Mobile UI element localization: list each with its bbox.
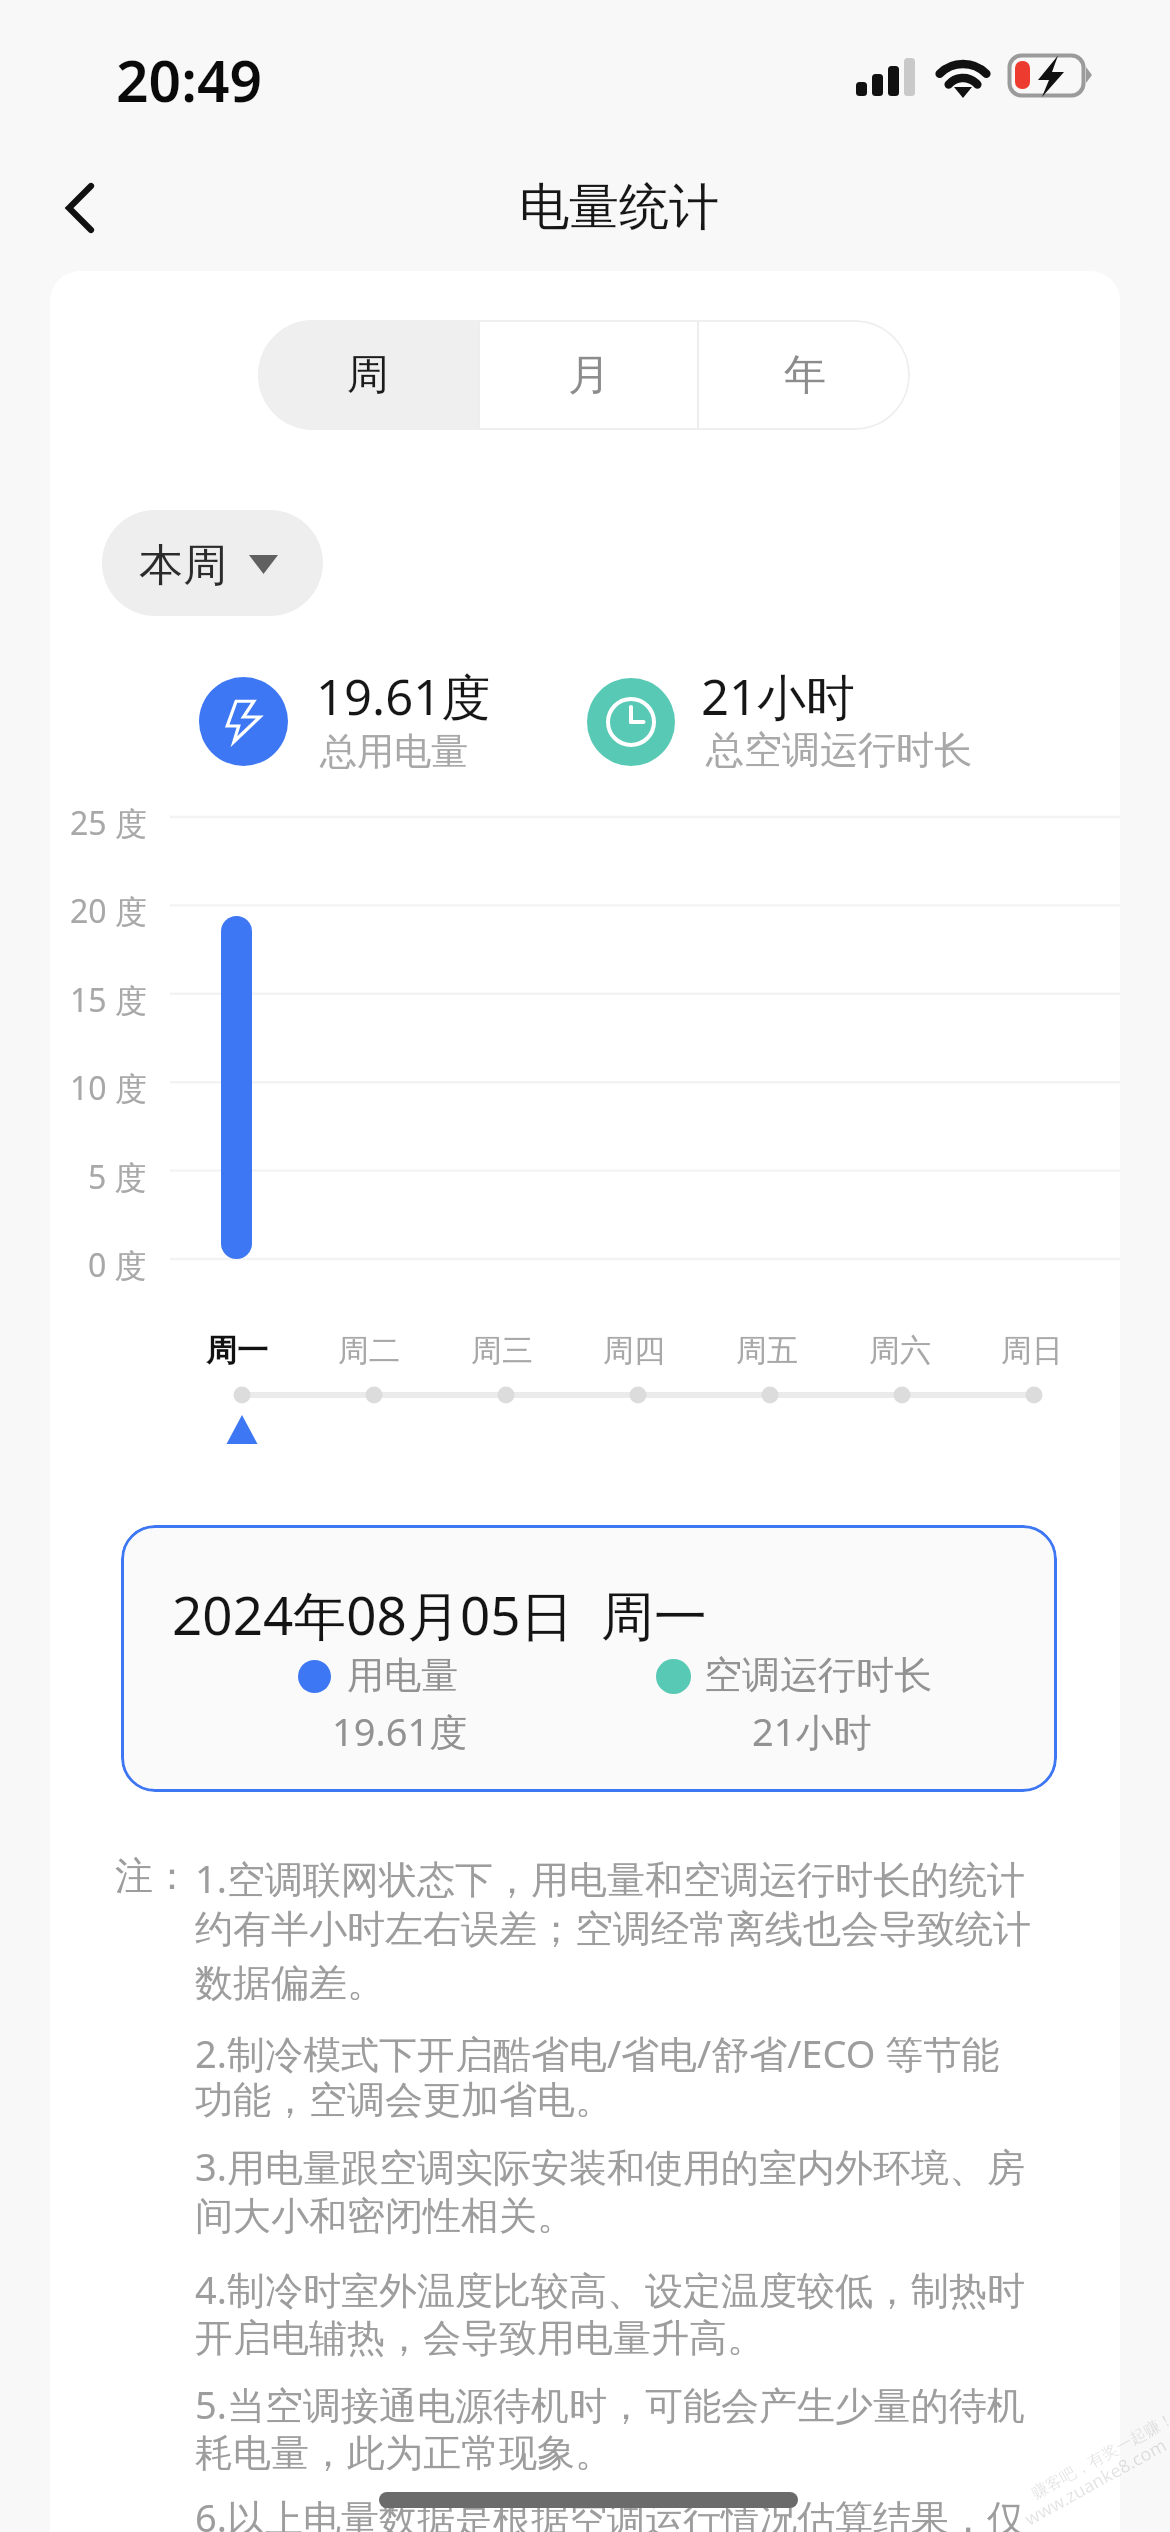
staticText: 3.用电量跟空调实际安装和使用的室内外环境、房 [195,2140,1025,2192]
staticText: 总空调运行时长 [706,726,972,774]
staticText: 开启电辅热，会导致用电量升高。 [195,2314,765,2362]
staticText: 5.当空调接通电源待机时，可能会产生少量的待机 [195,2378,1025,2430]
staticText: 2024年08月05日 周一 [172,1578,708,1650]
staticText: 20:49 [116,41,263,119]
button[interactable]: Back [35,163,125,253]
staticText: 19.61度 [332,1705,468,1757]
button[interactable]: 周 [258,320,478,430]
staticText: 注： [115,1852,191,1900]
button[interactable]: 月 [480,320,697,430]
staticText: 10 度 [70,1066,147,1110]
staticText: 耗电量，此为正常现象。 [195,2429,613,2477]
staticText: 2.制冷模式下开启酷省电/省电/舒省/ECO 等节能 [195,2027,1000,2079]
staticText: 本周 [139,538,227,593]
button[interactable]: 年 [699,320,910,430]
staticText: 5 度 [88,1155,147,1199]
staticText: 赚客吧，有奖一起赚！ [1028,2409,1170,2504]
button[interactable] [121,1525,1057,1792]
staticText: 周一 [206,1331,268,1370]
button[interactable]: 周一 [177,1328,297,1372]
button[interactable]: 周五 [707,1328,827,1372]
staticText: 20 度 [70,889,147,933]
staticText: 6.以上电量数据是根据空调运行情况估算结果，仅 [195,2491,1025,2532]
button[interactable]: 周六 [840,1328,960,1372]
staticText: 周四 [603,1331,665,1370]
button[interactable]: 周四 [574,1328,694,1372]
staticText: 4.制冷时室外温度比较高、设定温度较低，制热时 [195,2263,1025,2315]
staticText: 19.61度 [316,663,491,730]
staticText: 约有半小时左右误差；空调经常离线也会导致统计 [195,1905,1031,1953]
staticText: www.zuanke8.com [1020,2432,1170,2531]
button[interactable] [102,510,323,616]
staticText: 周日 [1001,1331,1063,1370]
staticText: 数据偏差。 [195,1959,385,2007]
staticText: 功能，空调会更加省电。 [195,2076,613,2124]
staticText: 21小时 [701,663,856,730]
staticText: 0 度 [88,1243,147,1287]
button[interactable]: 周二 [309,1328,429,1372]
staticText: 周 [347,349,389,402]
staticText: 空调运行时长 [704,1651,932,1699]
staticText: 总用电量 [320,728,468,775]
staticText: 间大小和密闭性相关。 [195,2192,575,2240]
staticText: 电量统计 [519,176,719,239]
button[interactable]: 周日 [972,1328,1092,1372]
staticText: 用电量 [347,1652,458,1699]
button[interactable]: 周三 [442,1328,562,1372]
staticText: 周二 [338,1331,400,1370]
staticText: 周五 [736,1331,798,1370]
staticText: 周六 [869,1331,931,1370]
staticText: 年 [784,349,826,402]
staticText: 周三 [471,1331,533,1370]
staticText: 月 [568,349,610,402]
staticText: 21小时 [752,1705,872,1757]
staticText: 25 度 [70,801,147,845]
staticText: 15 度 [70,978,147,1022]
staticText: 1.空调联网状态下，用电量和空调运行时长的统计 [195,1852,1025,1904]
